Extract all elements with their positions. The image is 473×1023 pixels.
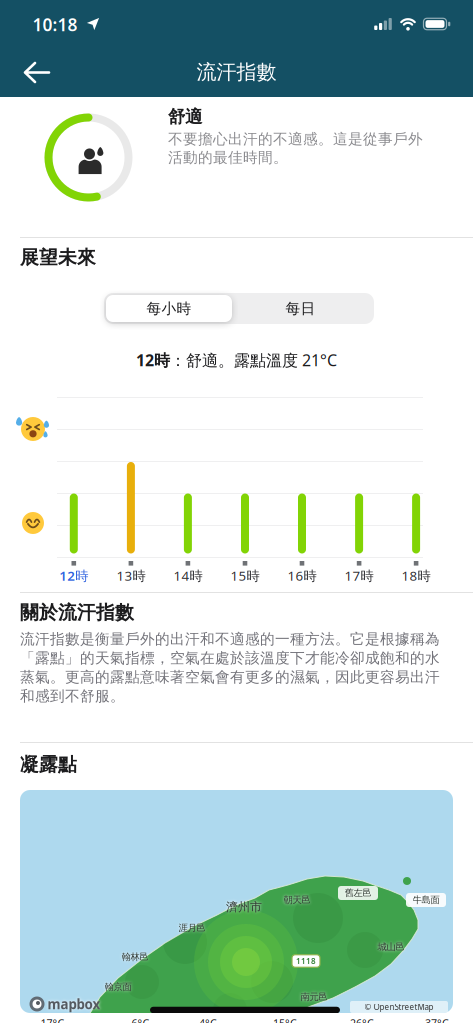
staticText: 「露點」的天氣指標，空氣在處於該溫度下才能冷卻成飽和的水 — [20, 649, 440, 667]
staticText: 涯月邑 — [178, 922, 205, 934]
staticText: 翰林邑 — [121, 951, 148, 963]
staticText: 16時 — [287, 567, 316, 584]
staticText: 26°C — [350, 1016, 374, 1023]
staticText: 城山邑 — [377, 941, 404, 953]
staticText: 和感到不舒服。 — [20, 687, 125, 705]
staticText: 不要擔心出汗的不適感。這是從事戶外 — [168, 130, 423, 148]
staticText: 每日 — [285, 299, 315, 317]
staticText: 翰京面 — [104, 981, 131, 993]
staticText: 18時 — [402, 567, 431, 584]
staticText: 37°C — [425, 1016, 449, 1023]
staticText: 12時 — [136, 349, 170, 371]
button[interactable]: 13時 — [116, 567, 145, 584]
button[interactable]: OpenStreetMap attribution — [350, 1001, 448, 1013]
staticText: mapbox — [47, 995, 100, 1013]
staticText: 關於流汗指數 — [20, 601, 134, 624]
staticText: 1118 — [296, 956, 316, 966]
button[interactable]: 每日 — [234, 295, 367, 322]
button[interactable]: 12時 — [59, 567, 88, 584]
button[interactable]: Mapbox — [29, 995, 100, 1013]
staticText: 牛島面 — [412, 894, 439, 906]
staticText: 17時 — [345, 567, 374, 584]
button[interactable]: Back — [16, 54, 58, 91]
staticText: 15時 — [230, 567, 259, 584]
staticText: 南元邑 — [300, 991, 327, 1003]
staticText: 朝天邑 — [283, 894, 310, 906]
staticText: 流汗指數是衡量戶外的出汗和不適感的一種方法。它是根據稱為 — [20, 630, 440, 648]
staticText: -17°C — [37, 1016, 64, 1023]
staticText: 舒適 — [168, 106, 202, 127]
staticText: 舊左邑 — [344, 887, 371, 899]
button[interactable]: 14時 — [173, 567, 202, 584]
staticText: 10:18 — [32, 13, 77, 36]
staticText: 14時 — [173, 567, 202, 584]
staticText: ：舒適。露點溫度 21°C — [170, 349, 337, 371]
staticText: 濟州市 — [226, 900, 262, 914]
button[interactable]: 每小時 — [104, 293, 234, 324]
staticText: -6°C — [128, 1016, 149, 1023]
button[interactable]: 16時 — [287, 567, 316, 584]
staticText: 凝露點 — [20, 753, 77, 776]
button[interactable]: 17時 — [345, 567, 374, 584]
staticText: 每小時 — [146, 299, 191, 317]
staticText: 15°C — [273, 1016, 297, 1023]
button[interactable]: 18時 — [402, 567, 431, 584]
button[interactable]: 15時 — [230, 567, 259, 584]
staticText: 4°C — [199, 1016, 217, 1023]
staticText: 蒸氣。更高的露點意味著空氣會有更多的濕氣，因此更容易出汗 — [20, 668, 440, 686]
staticText: 活動的最佳時間。 — [168, 148, 288, 166]
staticText: 展望未來 — [20, 246, 96, 269]
staticText: 12時 — [59, 567, 88, 584]
staticText: 流汗指數 — [196, 60, 276, 84]
staticText: © OpenStreetMap — [364, 1002, 433, 1012]
staticText: 13時 — [116, 567, 145, 584]
